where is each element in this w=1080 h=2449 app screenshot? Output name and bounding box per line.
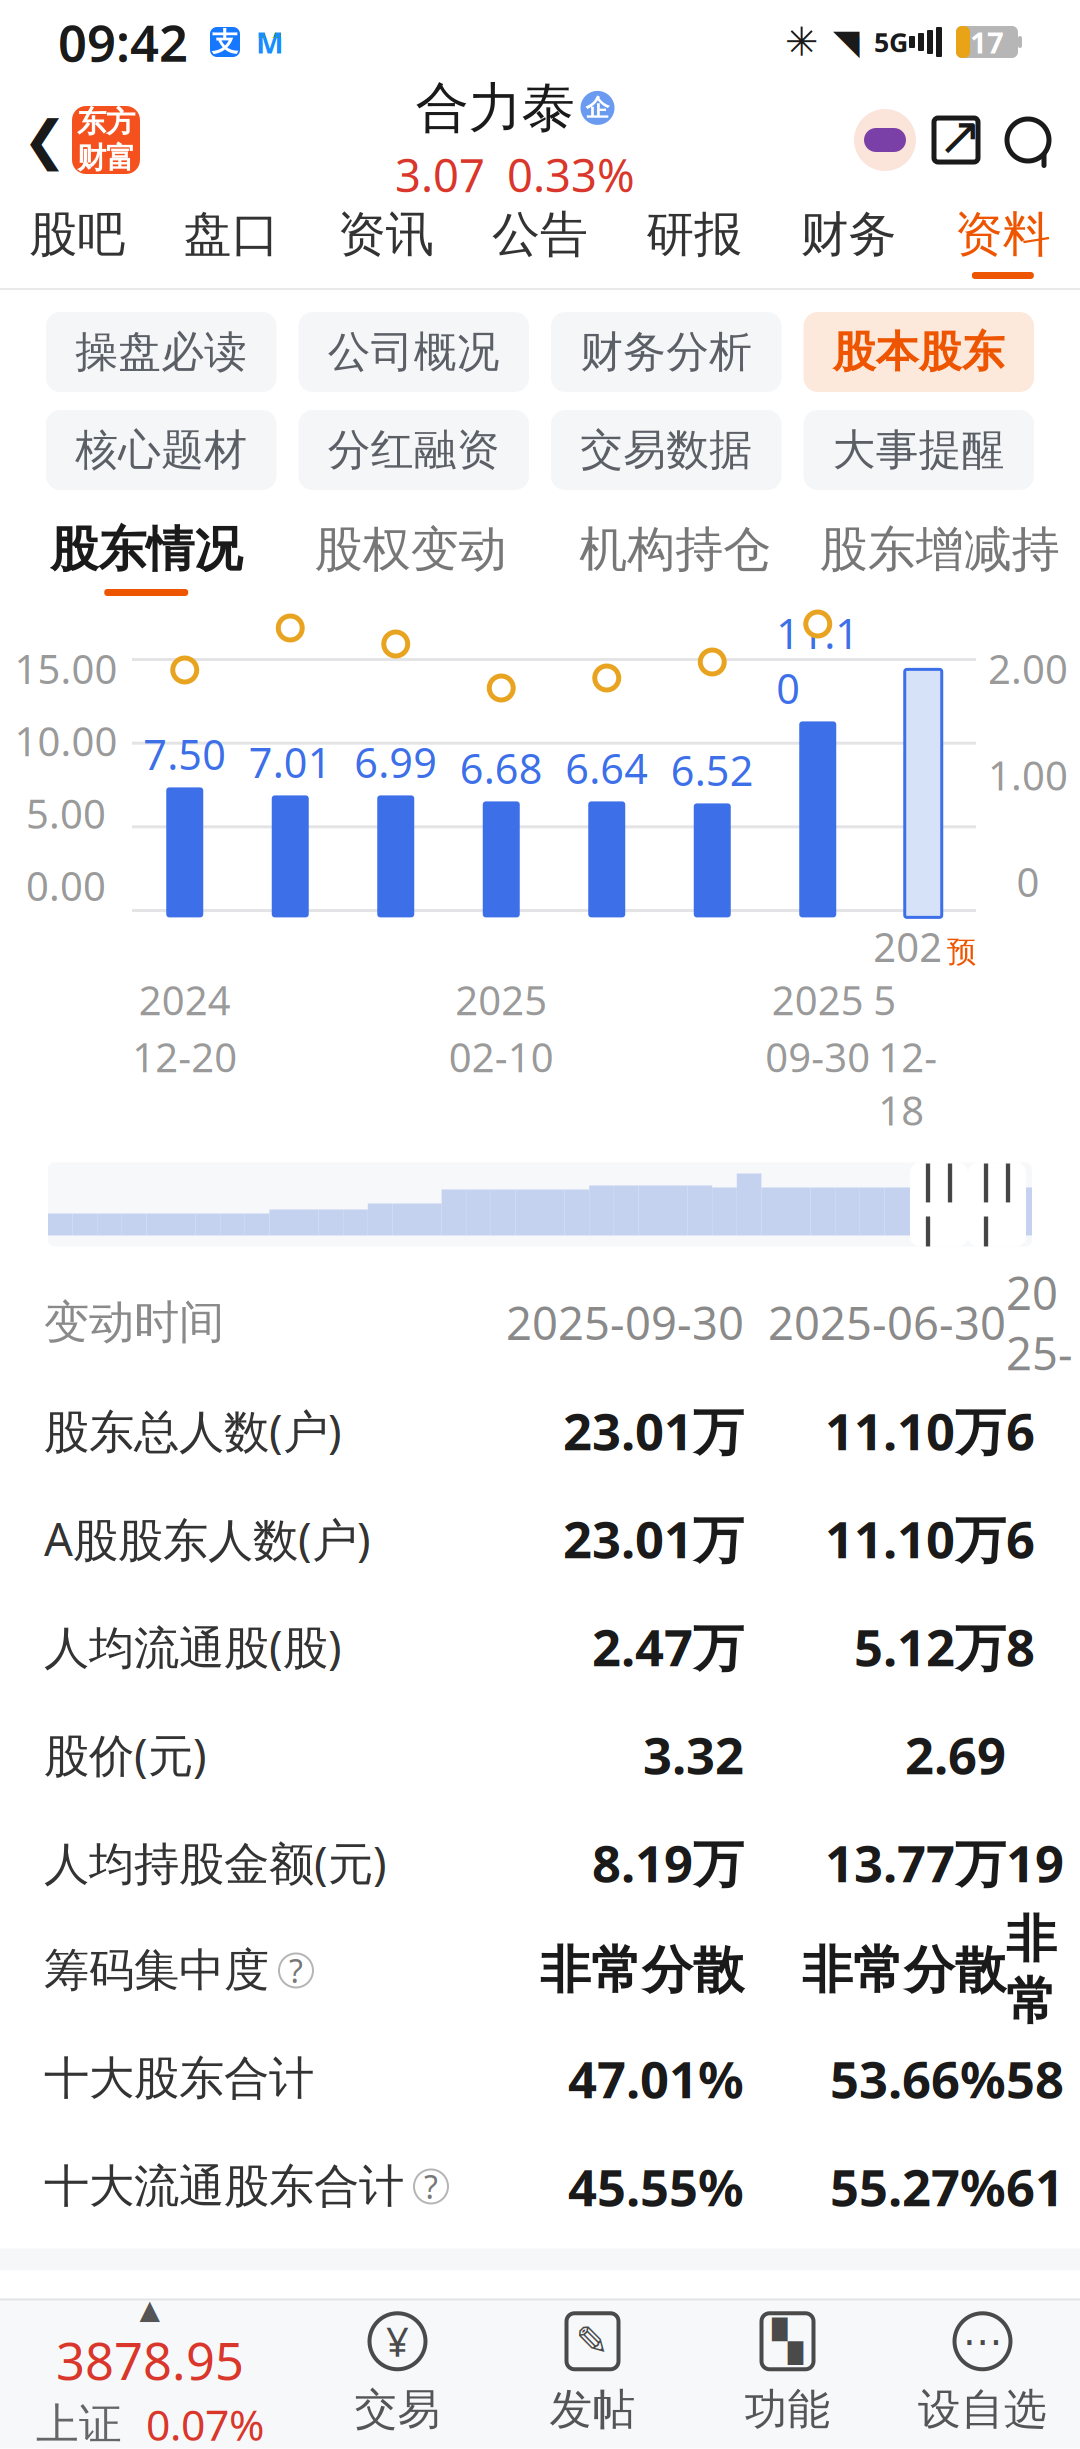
- staticText: 7.50: [143, 726, 226, 781]
- button[interactable]: 分享: [920, 95, 992, 185]
- staticText: 23.01万: [563, 1505, 744, 1572]
- staticText: 6.68: [460, 740, 543, 795]
- staticText: 企: [585, 93, 609, 123]
- staticText: 2025-09-30: [506, 1292, 744, 1353]
- staticText: 12-18: [878, 1030, 937, 1136]
- button[interactable]: ▚: [690, 2298, 885, 2448]
- button[interactable]: ✎: [495, 2298, 690, 2448]
- button[interactable]: 核心题材: [46, 410, 276, 490]
- staticText: 11.10: [776, 606, 859, 715]
- button[interactable]: 大事提醒: [803, 410, 1034, 490]
- staticText: ❮: [22, 110, 67, 170]
- staticText: 十大流通股东合计: [44, 2159, 404, 2214]
- staticText: 10.00: [14, 714, 117, 767]
- staticText: 人均流通股(股): [44, 1616, 342, 1677]
- staticText: 2.00: [988, 642, 1068, 695]
- staticText: 6.52: [671, 742, 754, 797]
- button[interactable]: 股东情况: [14, 510, 278, 606]
- staticText: 5.12万: [854, 1613, 1006, 1680]
- staticText: 0.33%: [507, 145, 635, 205]
- staticText: 47.01%: [568, 2045, 744, 2112]
- staticText: ✳: [785, 19, 819, 65]
- button[interactable]: 财务分析: [551, 312, 781, 392]
- staticText: 上证: [36, 2398, 122, 2449]
- staticText: 人均持股金额(元): [44, 1832, 387, 1893]
- staticText: 盘口: [183, 205, 279, 264]
- staticText: 61: [1006, 2153, 1064, 2220]
- button[interactable]: 搜索: [992, 95, 1064, 185]
- staticText: 股东总人数(户): [44, 1400, 342, 1461]
- button[interactable]: 上证指数 3878.95: [0, 2298, 300, 2448]
- button[interactable]: 研报: [617, 196, 771, 288]
- staticText: 15.00: [14, 642, 117, 695]
- staticText: 十大股东合计: [44, 2051, 314, 2106]
- button[interactable]: 机构持仓: [543, 510, 807, 606]
- button[interactable]: ¥: [300, 2298, 495, 2448]
- staticText: ✎: [575, 2319, 609, 2364]
- button[interactable]: 股本股东: [803, 312, 1034, 392]
- staticText: 财富: [77, 140, 135, 176]
- button[interactable]: 盘口: [154, 196, 309, 288]
- staticText: 操盘必读: [75, 326, 247, 378]
- button[interactable]: 交易数据: [551, 410, 781, 490]
- button[interactable]: 东方财富首页: [72, 106, 140, 174]
- staticText: 09-30: [765, 1030, 870, 1083]
- staticText: |||: [975, 1151, 1019, 1258]
- staticText: 筹码集中度: [44, 1943, 269, 1998]
- staticText: A股股东人数(户): [44, 1508, 371, 1569]
- staticText: 2024: [139, 973, 231, 1026]
- button[interactable]: 左侧缩放手柄: [910, 1162, 968, 1246]
- staticText: 0.00: [26, 859, 106, 912]
- staticText: 设自选: [918, 2383, 1047, 2436]
- staticText: 交易: [354, 2383, 440, 2436]
- staticText: 公司概况: [328, 326, 500, 378]
- staticText: 09:42: [58, 8, 188, 76]
- button[interactable]: 股权变动: [278, 510, 543, 606]
- staticText: 合力泰: [415, 75, 574, 141]
- button[interactable]: 右侧缩放手柄: [968, 1162, 1026, 1246]
- staticText: 机构持仓: [579, 520, 771, 579]
- button[interactable]: 财务: [771, 196, 926, 288]
- button[interactable]: 智能助手: [850, 95, 920, 185]
- staticText: 非常分散: [540, 1939, 744, 2002]
- staticText: 6.99: [354, 734, 437, 789]
- button[interactable]: 资料: [926, 196, 1080, 288]
- staticText: 发帖: [549, 2383, 635, 2436]
- staticText: 8: [1006, 1613, 1035, 1680]
- staticText: ◥: [833, 22, 860, 62]
- staticText: 5G: [874, 24, 908, 60]
- staticText: 0.07%: [146, 2396, 264, 2449]
- button[interactable]: 返回: [18, 95, 72, 185]
- staticText: ¥: [386, 2315, 409, 2368]
- button[interactable]: 操盘必读: [46, 312, 276, 392]
- staticText: ▚: [772, 2319, 803, 2364]
- staticText: 2025-06-30: [768, 1292, 1006, 1353]
- button[interactable]: 分红融资: [298, 410, 529, 490]
- staticText: 45.55%: [568, 2153, 744, 2220]
- button[interactable]: 股吧: [0, 196, 154, 288]
- staticText: 非常: [1006, 1908, 1057, 2033]
- staticText: 股权变动: [315, 520, 507, 579]
- staticText: 2025: [772, 973, 864, 1026]
- staticText: 预: [947, 934, 976, 970]
- staticText: 23.01万: [563, 1397, 744, 1464]
- staticText: 6: [1006, 1505, 1035, 1572]
- staticText: 核心题材: [75, 424, 247, 476]
- button[interactable]: ⋯: [885, 2298, 1080, 2448]
- button[interactable]: 公司概况: [298, 312, 529, 392]
- button[interactable]: 公告: [463, 196, 617, 288]
- staticText: 股东增减持: [820, 520, 1060, 579]
- staticText: 东方: [77, 104, 135, 140]
- staticText: 股本股东: [833, 326, 1005, 378]
- staticText: 财务: [801, 205, 897, 264]
- staticText: 2.47万: [592, 1613, 744, 1680]
- button[interactable]: 资讯: [309, 196, 463, 288]
- staticText: 3.32: [643, 1721, 744, 1788]
- staticText: 财务分析: [580, 326, 752, 378]
- button[interactable]: 股东增减持: [807, 510, 1072, 606]
- staticText: M: [256, 22, 284, 61]
- staticText: 12-20: [132, 1030, 237, 1083]
- staticText: ?: [424, 2165, 438, 2208]
- staticText: 11.10万: [825, 1397, 1006, 1464]
- staticText: 55.27%: [830, 2153, 1006, 2220]
